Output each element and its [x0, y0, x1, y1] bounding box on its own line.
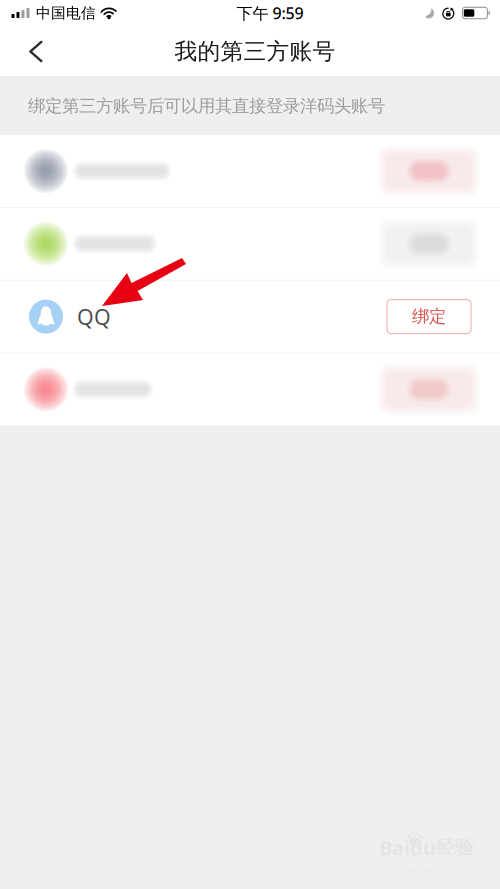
staticText: 绑定第三方账号后可以用其直接登录洋码头账号 — [28, 95, 385, 117]
button[interactable]: Unbind — [0, 135, 500, 207]
button[interactable]: QQ — [0, 281, 500, 353]
staticText: 经验 — [436, 836, 474, 859]
button[interactable]: Unbind — [377, 143, 481, 199]
staticText: 中国电信 — [36, 4, 96, 22]
staticText: Baidu — [379, 834, 436, 861]
button[interactable]: Unbind — [377, 216, 481, 272]
staticText: 我的第三方账号 — [174, 38, 335, 65]
button[interactable]: 绑定 — [387, 300, 471, 334]
staticText: 下午 9:59 — [237, 2, 304, 24]
button[interactable]: Back — [13, 28, 59, 74]
button[interactable]: Bind — [377, 361, 481, 417]
staticText: QQ — [77, 302, 111, 331]
button[interactable]: Bind — [0, 353, 500, 425]
staticText: 绑定 — [412, 306, 446, 327]
button[interactable]: Unbind — [0, 208, 500, 280]
